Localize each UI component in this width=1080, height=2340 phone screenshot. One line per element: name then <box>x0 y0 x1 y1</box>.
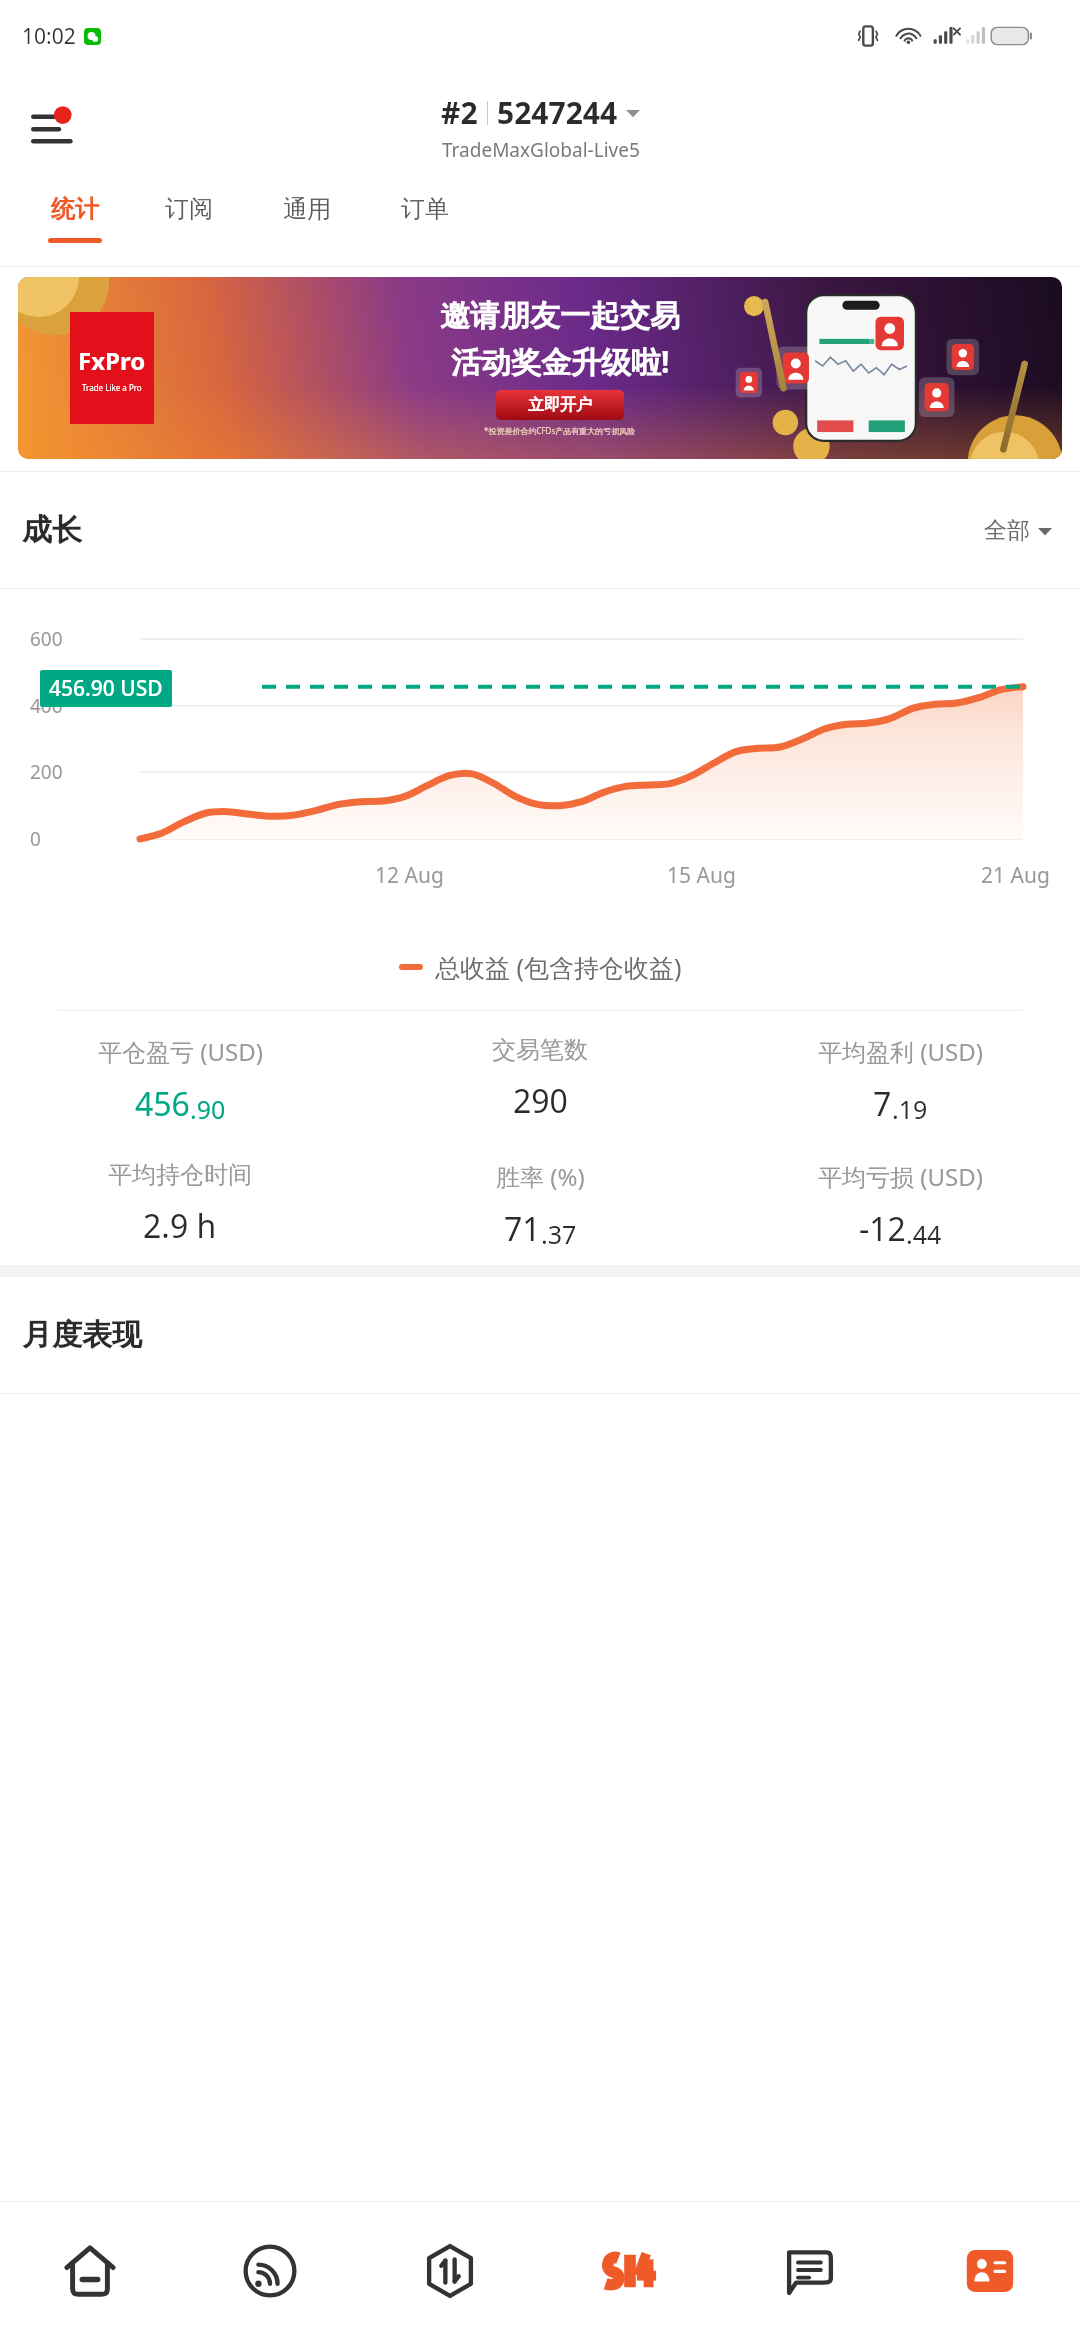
button[interactable]: 全部 <box>978 510 1058 551</box>
staticText: 订阅 <box>165 194 213 224</box>
staticText: 600 <box>30 626 63 652</box>
staticText: 成长 <box>22 511 82 549</box>
staticText: 平均持仓时间 <box>108 1160 252 1190</box>
staticText: 月度表现 <box>22 1316 142 1354</box>
staticText: FxPro <box>78 344 146 377</box>
staticText: 15 Aug <box>667 861 736 890</box>
button[interactable]: 胜率 (%) <box>360 1160 720 1251</box>
button[interactable]: Home <box>0 2202 180 2340</box>
staticText: -12 <box>859 1207 906 1251</box>
button[interactable]: Menu <box>20 91 92 163</box>
button[interactable]: 统计 <box>20 182 130 260</box>
staticText: 5247244 <box>497 92 618 133</box>
staticText: 456.90 USD <box>49 674 163 703</box>
staticText: 交易笔数 <box>492 1035 588 1065</box>
staticText: 订单 <box>401 194 449 224</box>
staticText: #2 <box>441 92 478 133</box>
staticText: 21 Aug <box>981 861 1050 890</box>
staticText: *投资差价合约CFDs产品有重大的亏损风险 <box>484 425 636 436</box>
button[interactable]: S14 <box>540 2202 720 2340</box>
button[interactable]: Trade <box>360 2202 540 2340</box>
staticText: 全部 <box>984 516 1030 545</box>
staticText: 邀请朋友一起交易 <box>440 297 680 335</box>
button[interactable]: Signals <box>180 2202 360 2340</box>
staticText: Trade Like a Pro <box>82 382 142 393</box>
staticText: .19 <box>892 1092 928 1126</box>
staticText: 统计 <box>51 194 99 224</box>
staticText: .90 <box>190 1092 226 1126</box>
staticText: 通用 <box>283 194 331 224</box>
staticText: 平仓盈亏 (USD) <box>98 1035 263 1068</box>
staticText: TradeMaxGlobal-Live5 <box>442 137 640 163</box>
staticText: .44 <box>906 1217 942 1251</box>
staticText: 总收益 (包含持仓收益) <box>435 950 682 984</box>
staticText: 290 <box>513 1079 568 1123</box>
staticText: 71 <box>504 1207 541 1251</box>
button[interactable]: 通用 <box>248 182 366 260</box>
staticText: 平均盈利 (USD) <box>818 1035 983 1068</box>
button[interactable]: 平均持仓时间 <box>0 1160 360 1248</box>
button[interactable]: FxPro <box>18 277 1062 459</box>
button[interactable]: Profile <box>900 2202 1080 2340</box>
staticText: 200 <box>30 759 63 785</box>
staticText: 活动奖金升级啦! <box>451 341 670 382</box>
staticText: 0 <box>30 826 41 852</box>
button[interactable]: Messages <box>720 2202 900 2340</box>
button[interactable]: #2 <box>441 92 640 163</box>
staticText: 胜率 (%) <box>496 1160 585 1193</box>
button[interactable]: 平均盈利 (USD) <box>720 1035 1080 1126</box>
staticText: 400 <box>30 693 63 719</box>
staticText: 456 <box>135 1082 190 1126</box>
button[interactable]: 订阅 <box>130 182 248 260</box>
staticText: 10:02 <box>22 22 76 51</box>
button[interactable]: 平均亏损 (USD) <box>720 1160 1080 1251</box>
staticText: 立即开户 <box>528 395 592 415</box>
button[interactable]: 订单 <box>366 182 484 260</box>
button[interactable]: 交易笔数 <box>360 1035 720 1123</box>
staticText: 12 Aug <box>375 861 444 890</box>
staticText: .37 <box>541 1217 577 1251</box>
staticText: 平均亏损 (USD) <box>818 1160 983 1193</box>
button[interactable]: 平仓盈亏 (USD) <box>0 1035 360 1126</box>
staticText: 2.9 h <box>143 1204 217 1248</box>
staticText: 7 <box>873 1082 892 1126</box>
